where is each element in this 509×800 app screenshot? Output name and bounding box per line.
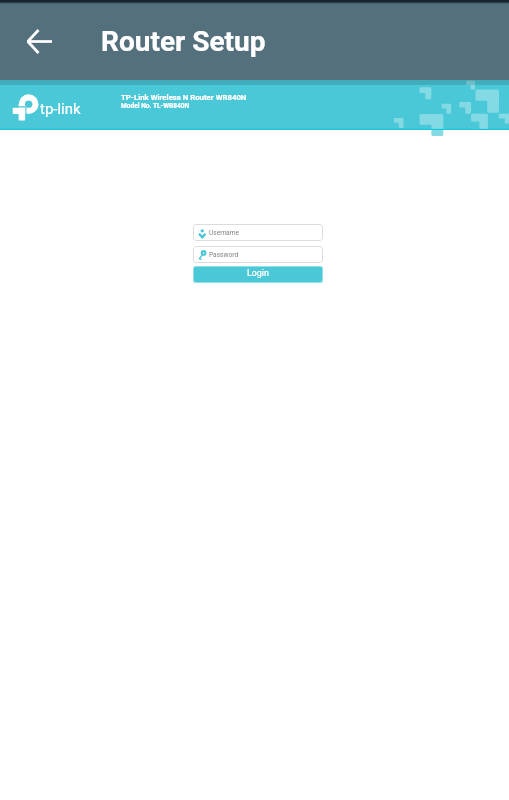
button[interactable]: Login [194, 267, 322, 282]
staticText: Login [247, 268, 269, 278]
staticText: TP-Link Wireless N Router WR840N [121, 93, 247, 102]
button[interactable]: Password [193, 246, 323, 263]
staticText: tp-link [40, 100, 81, 118]
staticText: Username [209, 229, 239, 237]
button[interactable]: Back [18, 20, 61, 63]
staticText: Router Setup [101, 25, 266, 58]
button[interactable]: Username [193, 224, 323, 241]
staticText: Model No. TL-WR840N [121, 102, 190, 110]
staticText: Password [209, 251, 239, 259]
